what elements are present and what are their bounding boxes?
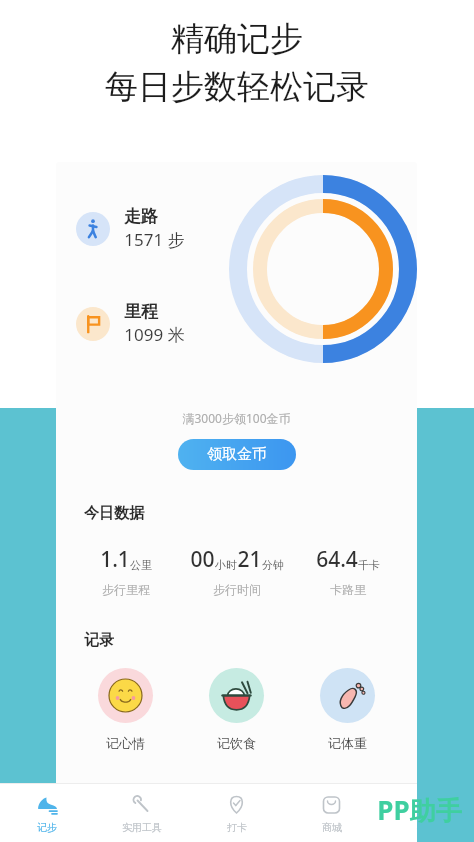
staticText: 1.1 — [100, 545, 130, 574]
staticText: 实用工具 — [122, 821, 162, 834]
staticText: 记饮食 — [217, 735, 256, 751]
staticText: 64.4 — [316, 545, 358, 574]
staticText: 今日数据 — [84, 504, 144, 523]
staticText: 记录 — [84, 631, 114, 650]
button[interactable]: 记步 — [0, 784, 94, 842]
staticText: 打卡 — [227, 821, 247, 834]
button[interactable]: 打卡 — [189, 784, 284, 842]
staticText: 小时 — [215, 558, 237, 572]
staticText: 卡路里 — [330, 582, 366, 597]
staticText: 公里 — [130, 558, 152, 572]
staticText: 精确记步 — [171, 18, 303, 60]
staticText: 千卡 — [358, 558, 380, 572]
staticText: 步行里程 — [102, 582, 150, 597]
staticText: 00 — [190, 545, 215, 574]
button[interactable]: 记饮食 — [181, 668, 292, 751]
button[interactable]: 记心情 — [70, 668, 181, 751]
staticText: 记步 — [37, 821, 57, 834]
staticText: 1571 步 — [124, 228, 185, 251]
button[interactable]: 里程 — [76, 301, 185, 346]
staticText: 记心情 — [106, 735, 145, 751]
button[interactable]: 实用工具 — [94, 784, 189, 842]
button[interactable]: 走路 — [76, 206, 185, 251]
staticText: 领取金币 — [207, 445, 267, 464]
button[interactable]: 我的 — [379, 784, 474, 842]
button[interactable]: 领取金币 — [178, 439, 296, 470]
staticText: 21 — [237, 545, 262, 574]
staticText: 1099 米 — [124, 323, 185, 346]
staticText: 分钟 — [262, 558, 284, 572]
staticText: 满3000步领100金币 — [182, 410, 291, 426]
staticText: 商城 — [322, 821, 342, 834]
staticText: PP助手 — [377, 792, 462, 828]
button[interactable]: 记体重 — [292, 668, 403, 751]
staticText: 里程 — [124, 301, 158, 322]
staticText: 记体重 — [328, 735, 367, 751]
button[interactable]: 商城 — [284, 784, 379, 842]
staticText: 步行时间 — [213, 582, 261, 597]
staticText: 每日步数轻松记录 — [105, 66, 369, 108]
staticText: 走路 — [124, 206, 158, 227]
staticText: 我的 — [417, 821, 437, 834]
